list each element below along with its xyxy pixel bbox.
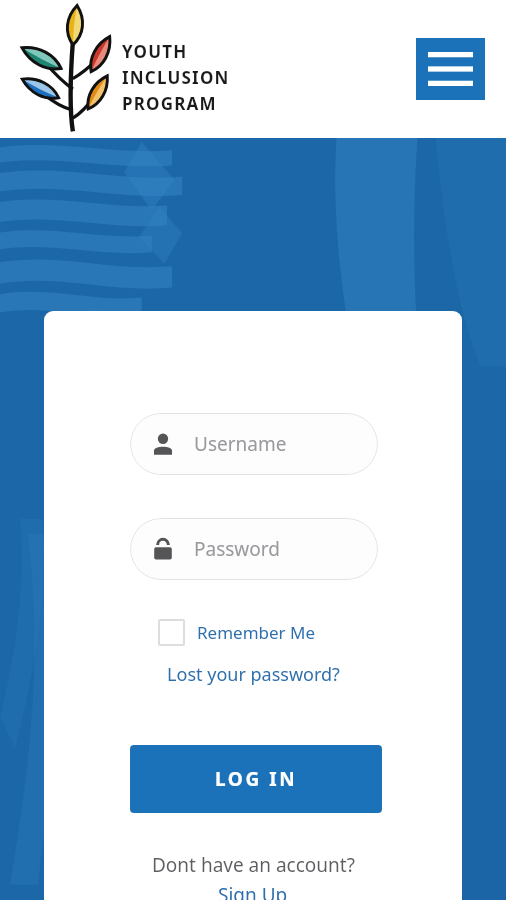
button[interactable]: Password field	[130, 518, 378, 580]
staticText: Dont have an account?	[152, 852, 355, 878]
staticText: INCLUSION	[122, 66, 230, 89]
staticText: Username	[194, 431, 287, 457]
staticText: YOUTH	[122, 40, 188, 63]
button[interactable]: Lost your password?	[44, 662, 462, 687]
button[interactable]: Remember Me	[158, 619, 316, 646]
staticText: LOG IN	[215, 766, 298, 792]
staticText: Password	[194, 536, 280, 562]
staticText: Remember Me	[197, 621, 316, 644]
button[interactable]: LOG IN	[130, 745, 382, 813]
button[interactable]: Open menu	[416, 38, 485, 100]
button[interactable]: Sign Up	[218, 882, 288, 900]
button[interactable]: Username field	[130, 413, 378, 475]
staticText: Sign Up	[218, 882, 288, 900]
staticText: PROGRAM	[122, 92, 217, 115]
staticText: Lost your password?	[167, 662, 340, 687]
